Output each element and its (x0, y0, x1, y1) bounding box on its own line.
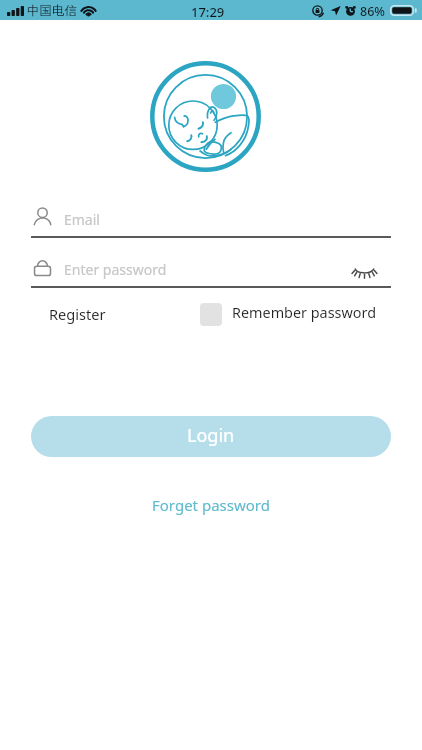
staticText: 17:29 (191, 3, 225, 21)
staticText: Login (187, 423, 235, 448)
staticText: 86% (360, 3, 385, 20)
staticText: Forget password (152, 495, 270, 515)
button[interactable]: Login (31, 416, 391, 457)
staticText: Register (49, 304, 106, 324)
staticText: Email (64, 210, 100, 229)
staticText: Remember password (232, 303, 376, 323)
button[interactable]: Remember password (200, 300, 376, 326)
button[interactable]: Register (49, 304, 106, 324)
button[interactable]: Forget password (146, 493, 276, 517)
button[interactable]: Show password (351, 258, 378, 284)
staticText: Enter password (64, 260, 167, 279)
staticText: 中国电信 (27, 3, 77, 19)
